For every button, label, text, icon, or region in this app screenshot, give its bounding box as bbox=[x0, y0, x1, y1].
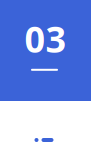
staticText: 03 bbox=[24, 15, 66, 63]
button[interactable]: Page 2, current page bbox=[41, 138, 53, 142]
button[interactable]: Page 1 bbox=[34, 138, 38, 142]
